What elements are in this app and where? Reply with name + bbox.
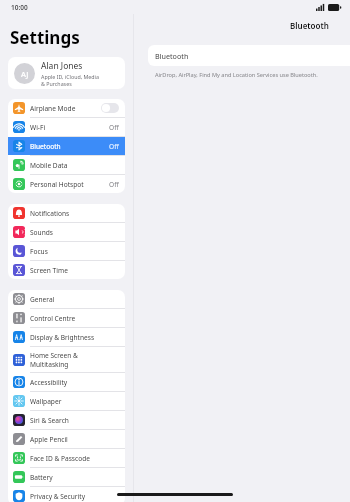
- button[interactable]: Screen Time: [8, 261, 125, 279]
- button[interactable]: Sounds: [8, 223, 125, 241]
- button[interactable]: Wallpaper: [8, 392, 125, 410]
- staticText: Apple Pencil: [30, 435, 119, 444]
- button[interactable]: Display & Brightness: [8, 328, 125, 346]
- button[interactable]: Personal Hotspot: [8, 175, 125, 193]
- staticText: Off: [109, 142, 119, 151]
- staticText: Off: [109, 123, 119, 132]
- button[interactable]: Control Centre: [8, 309, 125, 327]
- staticText: AirDrop, AirPlay, Find My and Location S…: [155, 71, 318, 79]
- staticText: Personal Hotspot: [30, 180, 109, 189]
- staticText: Screen Time: [30, 266, 119, 275]
- button[interactable]: Bluetooth: [8, 137, 125, 155]
- staticText: Bluetooth: [155, 51, 350, 61]
- staticText: Home Screen &: [30, 351, 78, 360]
- button[interactable]: Accessibility: [8, 373, 125, 391]
- staticText: AJ: [21, 69, 29, 79]
- staticText: Face ID & Passcode: [30, 454, 119, 463]
- staticText: Mobile Data: [30, 161, 119, 170]
- staticText: Alan Jones: [41, 60, 83, 72]
- staticText: Sounds: [30, 228, 119, 237]
- staticText: Accessibility: [30, 378, 119, 387]
- button[interactable]: AJ: [8, 57, 125, 89]
- button[interactable]: Apple Pencil: [8, 430, 125, 448]
- button[interactable]: Home Screen &: [8, 347, 125, 372]
- button[interactable]: Airplane Mode: [8, 99, 125, 117]
- button[interactable]: Focus: [8, 242, 125, 260]
- staticText: Notifications: [30, 209, 119, 218]
- staticText: Multitasking: [30, 360, 69, 369]
- staticText: Siri & Search: [30, 416, 119, 425]
- staticText: Settings: [10, 26, 80, 49]
- button[interactable]: Privacy & Security: [8, 487, 125, 502]
- staticText: Wi-Fi: [30, 123, 109, 132]
- staticText: Bluetooth: [30, 142, 109, 151]
- staticText: Apple ID, iCloud, Media: [41, 73, 99, 80]
- button[interactable]: General: [8, 290, 125, 308]
- staticText: Bluetooth: [290, 20, 329, 31]
- staticText: Battery: [30, 473, 119, 482]
- staticText: Privacy & Security: [30, 492, 119, 501]
- button[interactable]: Bluetooth: [148, 45, 350, 66]
- staticText: 10:00: [11, 3, 28, 12]
- button[interactable]: Mobile Data: [8, 156, 125, 174]
- button[interactable]: Face ID & Passcode: [8, 449, 125, 467]
- button[interactable]: Wi-Fi: [8, 118, 125, 136]
- staticText: Wallpaper: [30, 397, 119, 406]
- button[interactable]: Notifications: [8, 204, 125, 222]
- staticText: & Purchases: [41, 80, 72, 87]
- button[interactable]: Siri & Search: [8, 411, 125, 429]
- button[interactable]: Battery: [8, 468, 125, 486]
- staticText: Off: [109, 180, 119, 189]
- staticText: Airplane Mode: [30, 104, 101, 113]
- staticText: Display & Brightness: [30, 333, 119, 342]
- staticText: General: [30, 295, 119, 304]
- staticText: Focus: [30, 247, 119, 256]
- staticText: Control Centre: [30, 314, 119, 323]
